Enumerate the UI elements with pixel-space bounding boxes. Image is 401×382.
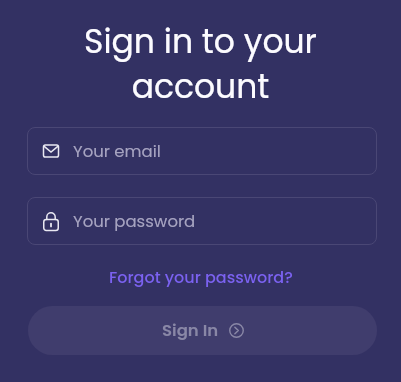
staticText: Sign in to your account bbox=[0, 18, 401, 110]
staticText: Your password bbox=[73, 210, 196, 233]
staticText: Your email bbox=[73, 140, 161, 163]
staticText: Forgot your password? bbox=[109, 266, 293, 288]
staticText: Sign In bbox=[162, 319, 219, 342]
